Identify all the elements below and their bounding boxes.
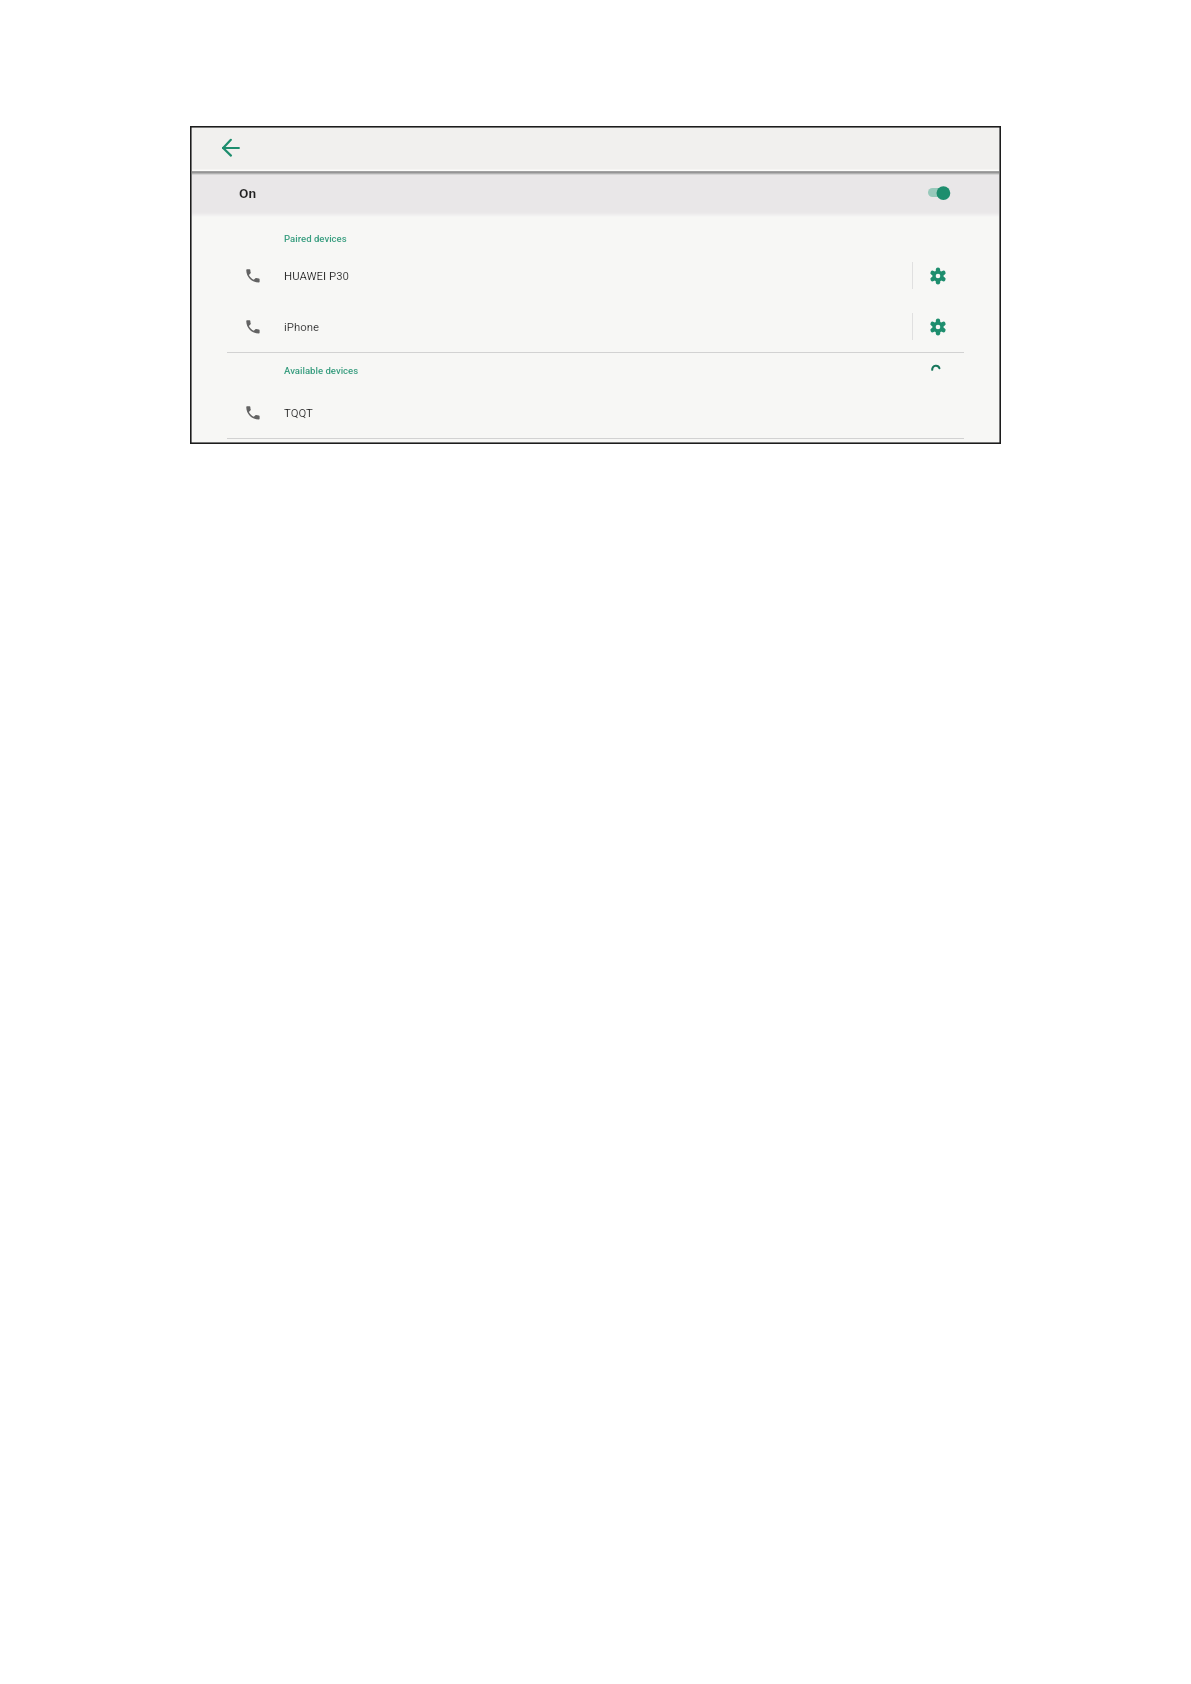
staticText: Paired devices xyxy=(284,233,347,244)
staticText: Available devices xyxy=(284,365,359,376)
button[interactable]: HUAWEI P30 settings xyxy=(922,260,954,292)
staticText: HUAWEI P30 xyxy=(284,269,349,282)
button[interactable]: HUAWEI P30 xyxy=(192,253,999,299)
button[interactable]: Navigate back xyxy=(213,130,249,166)
staticText: iPhone xyxy=(284,320,320,333)
button[interactable]: iPhone xyxy=(192,304,999,350)
button[interactable]: Bluetooth toggle xyxy=(928,185,958,207)
button[interactable]: iPhone settings xyxy=(922,311,954,343)
button[interactable]: TQQT xyxy=(192,390,999,436)
button[interactable] xyxy=(192,175,999,213)
staticText: On xyxy=(239,185,257,201)
other: Scanning xyxy=(926,360,950,384)
staticText: TQQT xyxy=(284,406,313,419)
